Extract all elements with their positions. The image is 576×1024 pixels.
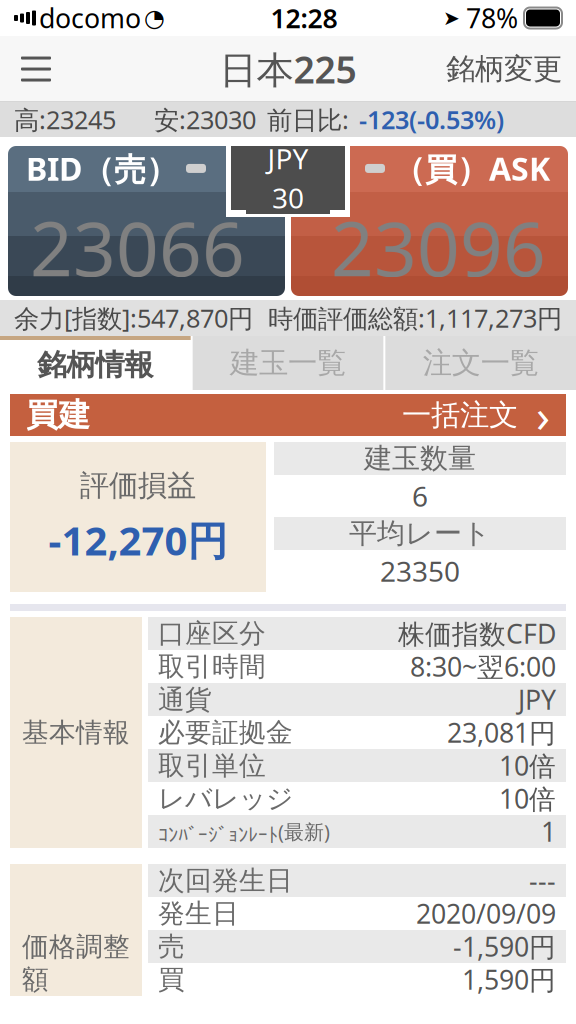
staticText: ---: [529, 863, 556, 898]
staticText: 日本225: [219, 44, 356, 94]
staticText: 一括注文: [402, 397, 518, 433]
staticText: 必要証拠金: [158, 716, 293, 749]
button[interactable]: 注文一覧: [385, 336, 576, 390]
staticText: 口座区分: [158, 617, 266, 650]
staticText: 買建: [26, 395, 90, 435]
staticText: 買: [158, 963, 185, 996]
staticText: docomo: [39, 0, 141, 36]
staticText: ｺﾝﾊﾞｰｼﾞｮﾝﾚｰﾄ(最新): [158, 818, 330, 845]
staticText: 1,590円: [462, 962, 556, 997]
staticText: 発生日: [158, 897, 239, 930]
button[interactable]: 買建: [0, 394, 576, 436]
staticText: JPY: [267, 140, 308, 177]
staticText: 基本情報: [22, 716, 130, 749]
staticText: 建玉数量: [364, 441, 476, 476]
staticText: -12,270円: [48, 513, 227, 567]
staticText: -123(-0.53%): [359, 103, 504, 136]
staticText: 6: [412, 477, 428, 515]
staticText: 取引時間: [158, 650, 266, 683]
staticText: レバレッジ: [158, 782, 293, 815]
staticText: -1,590円: [453, 929, 556, 964]
staticText: 10倍: [499, 781, 556, 816]
staticText: 銘柄情報: [37, 347, 153, 383]
staticText: BID（売）: [26, 147, 178, 190]
staticText: （買）ASK: [393, 147, 550, 190]
staticText: 23350: [380, 552, 460, 590]
staticText: 平均レート: [349, 516, 491, 551]
staticText: 銘柄変更: [446, 51, 562, 87]
button[interactable]: 銘柄情報: [0, 336, 191, 390]
staticText: 12:28: [270, 0, 337, 36]
staticText: 高:23245: [14, 103, 116, 136]
staticText: 株価指数CFD: [398, 616, 556, 651]
staticText: 8:30~翌6:00: [410, 649, 556, 684]
button[interactable]: （買）ASK: [291, 146, 568, 296]
staticText: 1: [541, 814, 556, 849]
staticText: 78%: [466, 0, 518, 36]
staticText: 次回発生日: [158, 864, 293, 897]
staticText: 23066: [30, 198, 245, 297]
staticText: 2020/09/09: [416, 896, 556, 931]
staticText: 23096: [331, 198, 546, 297]
staticText: ›: [536, 385, 550, 445]
staticText: JPY: [518, 682, 556, 717]
staticText: 時価評価総額:1,117,273円: [268, 301, 562, 335]
staticText: 注文一覧: [423, 345, 539, 381]
staticText: ◔: [144, 4, 165, 32]
staticText: ➤: [443, 7, 460, 29]
staticText: 余力[指数]:547,870円: [14, 301, 253, 335]
staticText: 取引単位: [158, 749, 266, 782]
button[interactable]: 建玉一覧: [193, 336, 383, 390]
button[interactable]: 銘柄変更: [432, 39, 576, 99]
staticText: 前日比:: [267, 103, 349, 136]
button[interactable]: BID（売）: [8, 146, 285, 296]
staticText: 30: [272, 179, 304, 216]
staticText: 10倍: [499, 748, 556, 783]
staticText: 建玉一覧: [230, 345, 346, 381]
staticText: 評価損益: [80, 467, 196, 503]
staticText: 通貨: [158, 683, 212, 716]
staticText: 価格調整額: [22, 930, 130, 996]
staticText: 安:23030: [154, 103, 256, 136]
staticText: 23,081円: [447, 715, 556, 750]
button[interactable]: メニュー: [0, 39, 72, 99]
staticText: 売: [158, 930, 185, 963]
